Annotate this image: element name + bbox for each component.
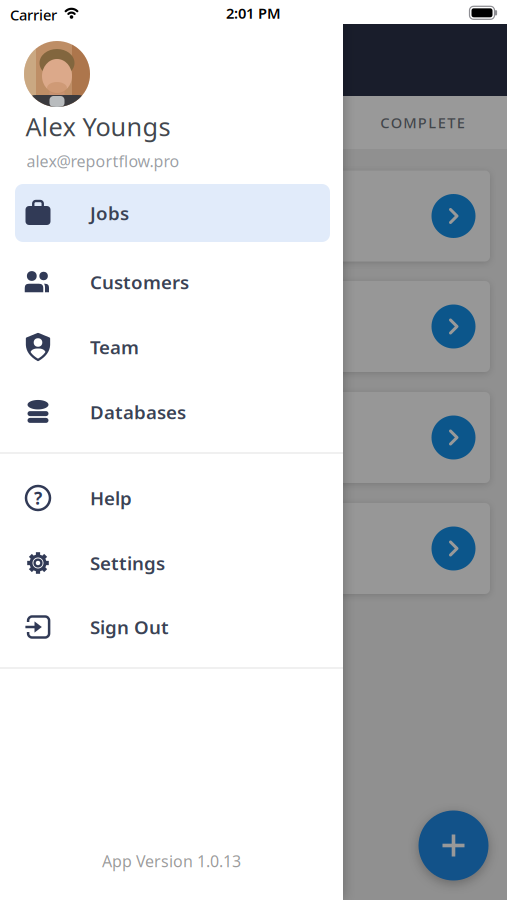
staticText: Team <box>90 335 139 359</box>
button[interactable]: Open job <box>15 281 490 372</box>
staticText: Help <box>90 486 132 510</box>
staticText: Databases <box>90 400 186 424</box>
button[interactable]: Add Job <box>418 810 488 880</box>
button[interactable]: Open job <box>15 170 490 261</box>
staticText: COMPLETE <box>380 113 465 132</box>
button[interactable]: COMPLETE <box>338 96 507 149</box>
button[interactable]: Open job <box>15 503 490 594</box>
staticText: Alex Youngs <box>25 109 170 143</box>
button[interactable]: Sign Out <box>15 598 330 656</box>
staticText: App Version 1.0.13 <box>102 850 241 872</box>
button[interactable]: Jobs <box>15 184 330 242</box>
button[interactable]: Open job <box>15 392 490 483</box>
staticText: Customers <box>90 270 189 294</box>
staticText: Carrier <box>10 5 57 24</box>
staticText: Jobs <box>90 201 129 225</box>
staticText: ? <box>34 486 42 509</box>
button[interactable]: Databases <box>15 383 330 441</box>
button[interactable]: ? <box>15 469 330 527</box>
staticText: Settings <box>90 551 165 575</box>
staticText: Sign Out <box>90 615 169 639</box>
button[interactable]: Team <box>15 318 330 376</box>
staticText: 2:01 PM <box>226 3 281 23</box>
staticText: alex@reportflow.pro <box>26 150 179 172</box>
button[interactable]: Settings <box>15 534 330 592</box>
button[interactable]: Customers <box>15 253 330 311</box>
